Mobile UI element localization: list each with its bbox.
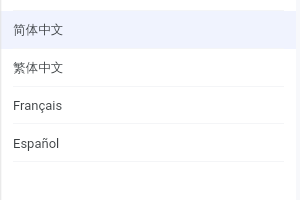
button[interactable]: Español (0, 124, 300, 162)
staticText: Français (13, 98, 63, 113)
button[interactable]: Français (0, 86, 300, 124)
staticText: 简体中文 (13, 22, 64, 38)
staticText: 繁体中文 (13, 60, 64, 76)
staticText: Español (13, 136, 60, 151)
button[interactable]: 繁体中文 (0, 49, 300, 87)
button[interactable]: 简体中文 (0, 11, 300, 49)
